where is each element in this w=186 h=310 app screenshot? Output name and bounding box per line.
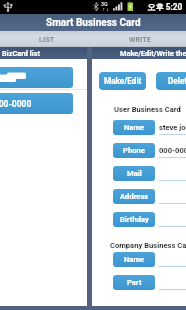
staticText: Mail	[127, 169, 142, 178]
staticText: Address	[120, 192, 149, 201]
button[interactable]: WRITE	[93, 31, 186, 47]
staticText: Smart Business Card	[46, 17, 141, 29]
staticText: LIST	[39, 35, 55, 44]
staticText: steve jobs	[159, 123, 186, 132]
button[interactable]: LIST	[0, 31, 93, 47]
staticText: Company Business Card	[110, 241, 186, 250]
staticText: Make/Edit/Write the Business Card	[120, 49, 186, 58]
button[interactable]: Birthday	[92, 212, 186, 227]
staticText: Birthday	[120, 215, 149, 224]
button[interactable]: Name	[92, 252, 186, 267]
staticText: 3G	[101, 1, 108, 7]
staticText: 000-0000-0000	[0, 99, 32, 109]
staticText: Delete	[168, 76, 186, 86]
button[interactable]: Delete	[156, 72, 186, 90]
staticText: BizCard list	[2, 49, 41, 58]
button[interactable]: Make/Edit	[99, 72, 146, 90]
button[interactable]: Phone	[92, 143, 186, 158]
staticText: ↑↓	[102, 7, 110, 12]
staticText: Name	[124, 123, 145, 132]
button[interactable]: Mail	[92, 166, 186, 181]
staticText: 000-0000	[159, 146, 186, 155]
button[interactable]: Name	[92, 120, 186, 135]
staticText: WRITE	[129, 35, 151, 44]
staticText: Make/Edit	[104, 76, 142, 86]
staticText: User Business Card	[114, 105, 181, 114]
staticText: Name	[124, 255, 145, 264]
staticText: 오후 5:20	[147, 2, 183, 12]
button[interactable]: Part	[92, 275, 186, 290]
button[interactable]: 9	[0, 67, 73, 88]
button[interactable]: Address	[92, 189, 186, 204]
staticText: Phone	[123, 146, 145, 155]
button[interactable]: 000-0000-0000	[0, 93, 73, 114]
staticText: Part	[127, 278, 142, 287]
